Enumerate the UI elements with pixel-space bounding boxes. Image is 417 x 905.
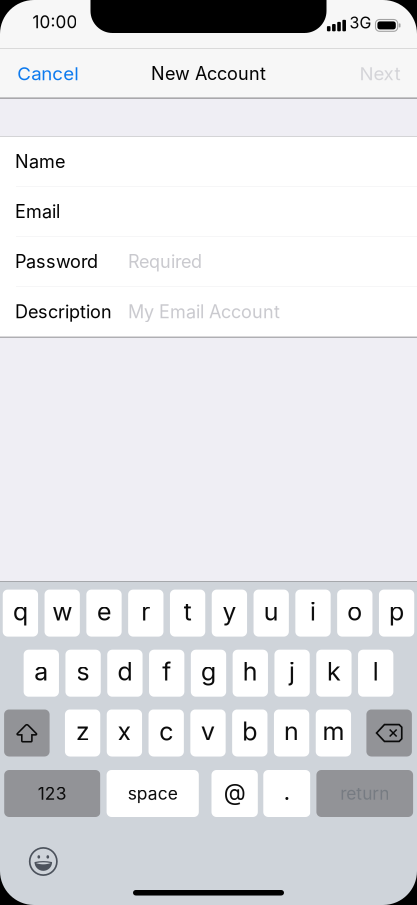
button[interactable]: j: [274, 650, 310, 697]
button[interactable]: b: [232, 709, 267, 756]
staticText: New Account: [151, 62, 266, 84]
staticText: 3G: [349, 13, 371, 32]
staticText: Email: [15, 201, 60, 222]
button[interactable]: .: [263, 770, 310, 817]
staticText: w: [52, 596, 72, 627]
button[interactable]: s: [65, 650, 101, 697]
button[interactable]: t: [170, 590, 205, 637]
staticText: y: [222, 596, 236, 627]
staticText: o: [347, 596, 362, 627]
staticText: .: [284, 778, 290, 805]
button[interactable]: g: [191, 650, 226, 697]
staticText: p: [389, 596, 404, 627]
staticText: d: [117, 656, 132, 687]
button[interactable]: @: [211, 770, 258, 817]
button[interactable]: a: [24, 650, 59, 697]
staticText: h: [243, 656, 258, 687]
button[interactable]: Next: [341, 49, 417, 98]
staticText: x: [117, 716, 131, 747]
button[interactable]: Name: [0, 137, 417, 186]
staticText: u: [264, 596, 279, 627]
button[interactable]: n: [274, 709, 309, 756]
button[interactable]: Password: [0, 237, 417, 286]
button[interactable]: Cancel: [0, 49, 97, 98]
staticText: n: [284, 716, 299, 747]
button[interactable]: Description: [0, 287, 417, 337]
staticText: Description: [15, 301, 112, 323]
staticText: j: [289, 656, 295, 687]
button[interactable]: i: [295, 590, 331, 637]
button[interactable]: Emoji keyboard: [20, 843, 66, 879]
staticText: Next: [359, 62, 400, 85]
button[interactable]: r: [128, 590, 163, 637]
button[interactable]: e: [86, 590, 122, 637]
staticText: k: [327, 656, 341, 687]
staticText: c: [159, 716, 173, 747]
staticText: space: [128, 783, 178, 804]
staticText: r: [141, 596, 150, 627]
staticText: My Email Account: [128, 301, 280, 323]
button[interactable]: Shift: [4, 709, 50, 756]
staticText: Cancel: [17, 62, 79, 85]
button[interactable]: Email: [0, 187, 417, 236]
button[interactable]: q: [3, 590, 38, 637]
staticText: Password: [15, 251, 98, 272]
staticText: v: [201, 716, 215, 747]
button[interactable]: 123: [4, 770, 100, 817]
button[interactable]: m: [316, 709, 351, 756]
button[interactable]: z: [65, 709, 100, 756]
staticText: m: [322, 716, 344, 747]
button[interactable]: space: [107, 770, 199, 817]
button[interactable]: p: [379, 590, 414, 637]
button[interactable]: k: [316, 650, 351, 697]
staticText: f: [162, 656, 171, 687]
staticText: return: [340, 783, 389, 804]
button[interactable]: u: [253, 590, 289, 637]
staticText: 123: [38, 783, 67, 804]
button[interactable]: d: [107, 650, 142, 697]
button[interactable]: o: [337, 590, 372, 637]
staticText: b: [242, 716, 257, 747]
staticText: Required: [128, 251, 202, 272]
staticText: g: [201, 656, 216, 687]
staticText: @: [224, 778, 246, 805]
button[interactable]: x: [107, 709, 142, 756]
staticText: e: [97, 596, 111, 627]
button[interactable]: y: [212, 590, 247, 637]
staticText: q: [13, 596, 28, 627]
button[interactable]: l: [358, 650, 393, 697]
staticText: Name: [15, 151, 65, 172]
button[interactable]: c: [148, 709, 184, 756]
button[interactable]: return: [316, 770, 413, 817]
button[interactable]: f: [149, 650, 184, 697]
button[interactable]: w: [44, 590, 80, 637]
staticText: l: [373, 656, 379, 687]
staticText: t: [184, 596, 192, 627]
button[interactable]: h: [233, 650, 268, 697]
staticText: i: [310, 596, 316, 627]
button[interactable]: Delete: [366, 709, 412, 756]
staticText: 10:00: [32, 12, 77, 32]
staticText: a: [34, 656, 48, 687]
button[interactable]: v: [190, 709, 226, 756]
staticText: s: [77, 656, 90, 687]
staticText: z: [76, 716, 89, 747]
